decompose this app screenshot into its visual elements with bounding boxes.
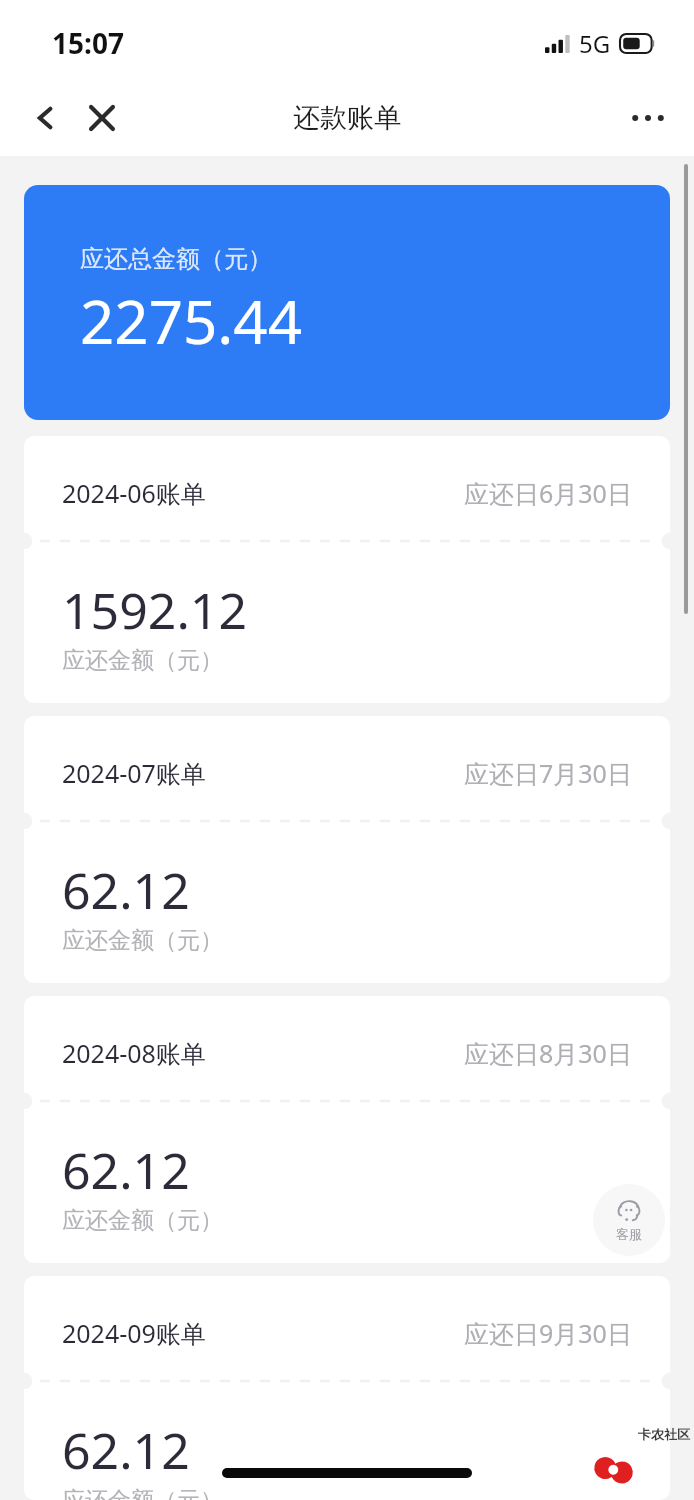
staticText: 客服	[616, 1226, 642, 1242]
button[interactable]: 2024-08账单	[24, 996, 670, 1263]
button[interactable]: 2024-09账单	[24, 1276, 670, 1500]
staticText: 应还日9月30日	[464, 1316, 632, 1350]
staticText: 62.12	[62, 1416, 190, 1484]
staticText: 2024-06账单	[62, 476, 206, 510]
staticText: 62.12	[62, 1136, 190, 1204]
button[interactable]: 客服	[593, 1184, 665, 1256]
staticText: 2024-08账单	[62, 1036, 206, 1070]
staticText: 卡农社区	[638, 1426, 690, 1442]
staticText: 应还日8月30日	[464, 1036, 632, 1070]
button[interactable]: 2024-06账单	[24, 436, 670, 703]
button[interactable]: 返回	[18, 90, 74, 146]
staticText: 应还金额（元）	[62, 1486, 223, 1500]
staticText: 应还总金额（元）	[80, 244, 272, 274]
staticText: 15:07	[52, 24, 124, 62]
staticText: 应还金额（元）	[62, 926, 223, 955]
staticText: 1592.12	[62, 576, 247, 644]
button[interactable]: 应还总金额（元）	[24, 185, 670, 420]
staticText: 2275.44	[80, 280, 302, 362]
staticText: 应还日7月30日	[464, 756, 632, 790]
staticText: 还款账单	[293, 101, 401, 135]
staticText: 2024-09账单	[62, 1316, 206, 1350]
staticText: 2024-07账单	[62, 756, 206, 790]
button[interactable]: 更多	[620, 90, 676, 146]
staticText: 62.12	[62, 856, 190, 924]
staticText: 应还日6月30日	[464, 476, 632, 510]
staticText: 应还金额（元）	[62, 1206, 223, 1235]
button[interactable]: 关闭	[74, 90, 130, 146]
staticText: 5G	[579, 27, 611, 60]
staticText: 应还金额（元）	[62, 646, 223, 675]
button[interactable]: 2024-07账单	[24, 716, 670, 983]
